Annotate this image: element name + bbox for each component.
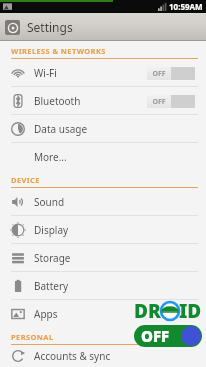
staticText: Storage [34, 251, 71, 265]
button[interactable]: Battery [0, 272, 206, 299]
staticText: Settings [27, 19, 73, 35]
button[interactable]: OFF [147, 66, 195, 80]
staticText: More... [34, 150, 67, 164]
button[interactable]: Wi-Fi [0, 59, 206, 86]
button[interactable]: Apps [0, 300, 206, 327]
button[interactable]: More... [0, 143, 206, 170]
staticText: PERSONAL [11, 332, 54, 342]
staticText: Bluetooth [34, 94, 81, 108]
button[interactable]: Display [0, 216, 206, 243]
staticText: Battery [34, 279, 69, 293]
staticText: OFF [141, 326, 170, 346]
button[interactable]: Sound [0, 188, 206, 215]
staticText: OFF [152, 69, 166, 79]
staticText: ID [179, 298, 202, 324]
staticText: Data usage [34, 122, 88, 136]
staticText: WIRELESS & NETWORKS [11, 46, 106, 56]
staticText: Accounts & sync [34, 349, 111, 363]
staticText: DEVICE [11, 175, 40, 185]
button[interactable]: Storage [0, 244, 206, 271]
staticText: OFF [152, 97, 166, 107]
staticText: Display [34, 223, 69, 237]
button[interactable]: OFF [147, 94, 195, 108]
button[interactable]: Accounts & sync [0, 345, 206, 367]
button[interactable]: Bluetooth [0, 87, 206, 114]
staticText: DR [134, 298, 161, 324]
button[interactable]: Settings [0, 13, 206, 41]
staticText: Apps [34, 307, 58, 321]
staticText: Wi-Fi [34, 66, 57, 80]
staticText: 10:59AM [169, 1, 203, 12]
button[interactable]: Data usage [0, 115, 206, 142]
staticText: Sound [34, 195, 65, 209]
